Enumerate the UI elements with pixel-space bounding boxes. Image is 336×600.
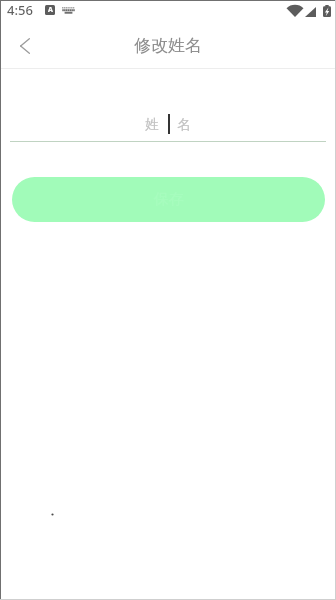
staticText: A	[48, 5, 53, 15]
button[interactable]: 保存	[12, 177, 325, 222]
staticText: 姓	[145, 116, 159, 133]
staticText: 名	[177, 116, 191, 133]
staticText: 4:56	[7, 1, 33, 19]
staticText: 修改姓名	[134, 35, 202, 56]
button[interactable]: Back	[0, 23, 50, 68]
